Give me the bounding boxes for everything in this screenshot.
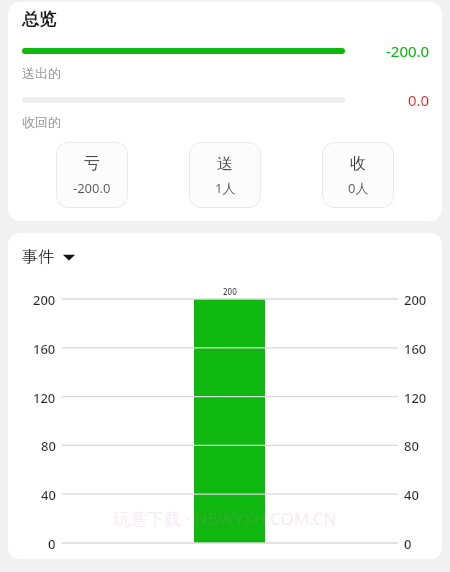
staticText: 40 bbox=[404, 486, 419, 502]
staticText: 送 bbox=[217, 154, 233, 174]
staticText: 收回的 bbox=[22, 114, 61, 130]
staticText: 收 bbox=[350, 154, 366, 174]
staticText: 亏 bbox=[84, 154, 100, 174]
staticText: 1人 bbox=[215, 179, 236, 197]
staticText: 120 bbox=[33, 389, 56, 405]
button[interactable]: 收 bbox=[322, 142, 394, 208]
staticText: 0 bbox=[48, 535, 56, 551]
staticText: 200 bbox=[404, 291, 427, 307]
button[interactable]: 事件 bbox=[22, 247, 76, 267]
other: Expand event selector bbox=[62, 252, 76, 262]
staticText: 送出的 bbox=[22, 65, 61, 81]
staticText: 0人 bbox=[348, 179, 369, 197]
staticText: 总览 bbox=[22, 9, 56, 30]
staticText: 80 bbox=[41, 437, 56, 453]
staticText: 160 bbox=[33, 340, 56, 356]
staticText: 0.0 bbox=[408, 90, 430, 110]
staticText: 200 bbox=[33, 291, 56, 307]
staticText: 事件 bbox=[22, 247, 54, 267]
staticText: 200 bbox=[223, 286, 237, 297]
staticText: 40 bbox=[41, 486, 56, 502]
staticText: 玩意下载 · NBWYXH.COM.CN bbox=[113, 507, 337, 530]
staticText: -200.0 bbox=[73, 179, 111, 197]
staticText: -200.0 bbox=[386, 41, 430, 61]
button[interactable]: 亏 bbox=[56, 142, 128, 208]
staticText: 80 bbox=[404, 437, 419, 453]
button[interactable]: 送 bbox=[189, 142, 261, 208]
staticText: 160 bbox=[404, 340, 427, 356]
staticText: 0 bbox=[404, 535, 412, 551]
staticText: 120 bbox=[404, 389, 427, 405]
